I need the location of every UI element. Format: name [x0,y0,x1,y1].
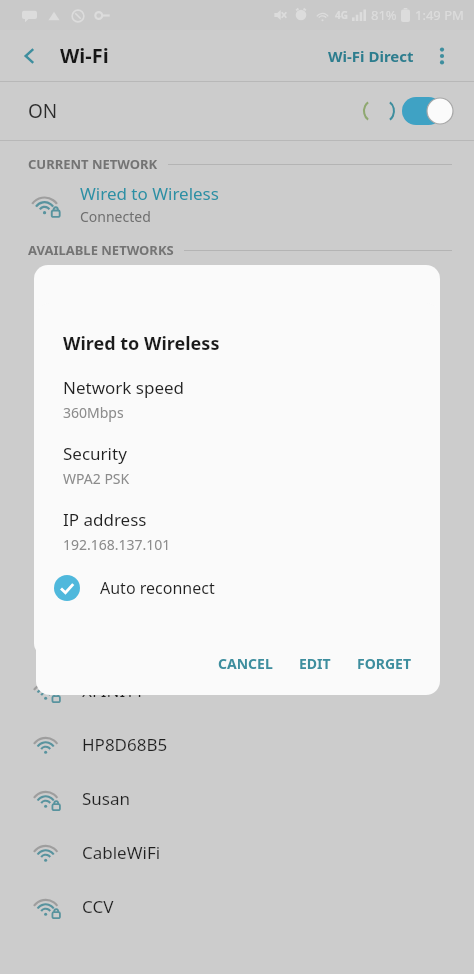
staticText: CableWiFi [82,841,161,864]
button[interactable]: FORGET [344,646,424,681]
staticText: CCV [82,895,114,918]
staticText: 360Mbps [63,403,124,422]
staticText: IP address [63,508,147,531]
staticText: Security [63,442,127,465]
staticText: XFINITY [82,679,145,702]
button[interactable]: Wired to Wireless [0,173,474,235]
staticText: WPA2 PSK [63,469,130,488]
button[interactable]: XFINITY [0,663,474,717]
staticText: FORGET [357,654,411,673]
button[interactable]: Auto reconnect [54,568,215,608]
staticText: Auto reconnect [100,577,215,599]
staticText: Network speed [63,376,185,399]
button[interactable]: CCV [0,879,474,933]
staticText: 1:49 PM [415,6,464,24]
staticText: 81% [371,6,397,24]
staticText: CANCEL [218,654,273,673]
staticText: ON [28,98,58,124]
button[interactable]: CANCEL [205,646,286,681]
staticText: Wi-Fi Direct [328,46,414,66]
button[interactable]: CableWiFi [0,825,474,879]
staticText: Wired to Wireless [80,182,219,205]
staticText: Wi-Fi [60,42,109,69]
button[interactable]: Susan [0,771,474,825]
button[interactable]: Wi-Fi Direct [324,40,418,72]
staticText: EDIT [299,654,331,673]
button[interactable]: HP8D68B5 [0,717,474,771]
staticText: 4G [335,8,348,22]
button[interactable]: Wi-Fi toggle [402,97,454,125]
staticText: 192.168.137.101 [63,535,171,554]
staticText: Susan [82,787,131,810]
button[interactable]: ON [0,82,474,140]
staticText: HP8D68B5 [82,733,168,756]
button[interactable]: EDIT [286,646,344,681]
staticText: AVAILABLE NETWORKS [28,241,174,259]
staticText: Wired to Wireless [63,331,220,356]
staticText: Connected [80,207,151,226]
button[interactable]: More options [422,36,462,76]
staticText: CURRENT NETWORK [28,155,158,173]
button[interactable]: Back [10,36,50,76]
